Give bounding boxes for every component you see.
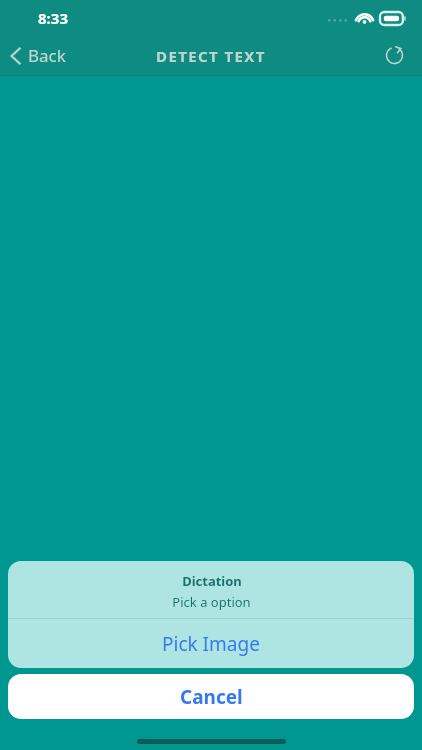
staticText: Pick Image [162,631,260,657]
button[interactable]: Refresh [374,36,414,75]
button[interactable]: Back [0,38,78,73]
staticText: Back [28,44,66,67]
button[interactable]: Pick Image [8,619,414,668]
staticText: DETECT TEXT [156,46,266,66]
staticText: 8:33 [38,8,68,28]
staticText: Cancel [180,684,243,710]
staticText: Dictation [182,572,242,590]
staticText: Pick a option [172,593,251,611]
button[interactable]: Cancel [8,674,414,719]
